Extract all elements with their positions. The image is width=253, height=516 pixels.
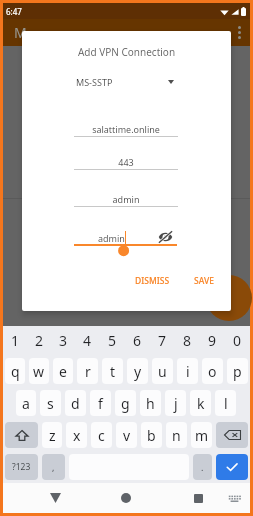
button[interactable]: i bbox=[177, 358, 198, 384]
button[interactable]: ?123 bbox=[5, 454, 38, 480]
button[interactable]: 2 bbox=[27, 326, 51, 355]
staticText: q bbox=[11, 362, 20, 381]
button[interactable]: Backspace bbox=[216, 422, 248, 448]
staticText: n bbox=[172, 426, 181, 445]
button[interactable]: . bbox=[193, 454, 212, 480]
button[interactable]: u bbox=[152, 358, 173, 384]
button[interactable]: z bbox=[42, 422, 62, 448]
staticText: d bbox=[71, 394, 80, 413]
button[interactable]: g bbox=[115, 390, 136, 416]
button[interactable]: 4 bbox=[75, 326, 100, 355]
staticText: , bbox=[52, 461, 55, 473]
staticText: u bbox=[158, 362, 167, 381]
staticText: MS-SSTP bbox=[76, 76, 113, 88]
staticText: x bbox=[73, 426, 81, 445]
staticText: a bbox=[22, 394, 30, 413]
button[interactable]: s bbox=[40, 390, 61, 416]
staticText: s bbox=[47, 394, 54, 413]
staticText: salattime.online bbox=[74, 123, 178, 135]
button[interactable]: t bbox=[102, 358, 123, 384]
staticText: l bbox=[224, 394, 228, 413]
button[interactable]: MS-SSTP bbox=[76, 74, 174, 90]
button[interactable]: c bbox=[91, 422, 112, 448]
button[interactable]: 9 bbox=[200, 326, 225, 355]
staticText: 1 bbox=[11, 331, 20, 350]
staticText: i bbox=[186, 362, 190, 381]
button[interactable]: f bbox=[90, 390, 111, 416]
other: Backspace bbox=[224, 429, 241, 441]
button[interactable]: SAVE bbox=[187, 272, 221, 289]
staticText: v bbox=[123, 426, 131, 445]
button[interactable]: a bbox=[16, 390, 36, 416]
staticText: 6:47 bbox=[6, 6, 22, 17]
button[interactable]: r bbox=[77, 358, 98, 384]
staticText: k bbox=[197, 394, 205, 413]
button[interactable]: m bbox=[191, 422, 212, 448]
button[interactable]: v bbox=[116, 422, 137, 448]
staticText: 0 bbox=[233, 331, 242, 350]
staticText: y bbox=[134, 362, 142, 381]
staticText: . bbox=[201, 461, 204, 473]
button[interactable]: Toggle password visibility bbox=[155, 228, 175, 246]
button[interactable]: Add VPN bbox=[206, 275, 252, 321]
button[interactable]: Shift bbox=[5, 422, 38, 448]
button[interactable]: e bbox=[53, 358, 73, 384]
staticText: 6 bbox=[133, 331, 142, 350]
staticText: admin bbox=[74, 193, 178, 205]
staticText: m bbox=[195, 426, 209, 445]
button[interactable]: k bbox=[190, 390, 211, 416]
button[interactable]: b bbox=[141, 422, 162, 448]
staticText: t bbox=[110, 362, 116, 381]
staticText: b bbox=[147, 426, 156, 445]
button[interactable]: 7 bbox=[150, 326, 175, 355]
button[interactable]: 6 bbox=[125, 326, 150, 355]
staticText: j bbox=[174, 394, 178, 413]
button[interactable]: Home bbox=[111, 483, 141, 513]
staticText: 443 bbox=[74, 156, 178, 168]
button[interactable]: d bbox=[65, 390, 86, 416]
button[interactable]: Recent apps bbox=[183, 483, 213, 513]
button[interactable]: w bbox=[29, 358, 49, 384]
staticText: 3 bbox=[59, 331, 68, 350]
staticText: 5 bbox=[108, 331, 117, 350]
staticText: p bbox=[233, 362, 242, 381]
button[interactable]: Enter bbox=[216, 454, 248, 480]
staticText: 4 bbox=[83, 331, 92, 350]
button[interactable]: q bbox=[5, 358, 25, 384]
staticText: h bbox=[146, 394, 155, 413]
button[interactable]: Change keyboard bbox=[221, 483, 247, 513]
button[interactable]: p bbox=[227, 358, 248, 384]
button[interactable]: o bbox=[202, 358, 223, 384]
staticText: e bbox=[59, 362, 67, 381]
staticText: w bbox=[33, 362, 45, 381]
staticText: 7 bbox=[158, 331, 167, 350]
staticText: c bbox=[98, 426, 105, 445]
button[interactable]: 3 bbox=[51, 326, 75, 355]
button[interactable]: j bbox=[165, 390, 186, 416]
button[interactable]: 0 bbox=[225, 326, 250, 355]
button[interactable]: DISMISS bbox=[126, 272, 178, 289]
button[interactable]: h bbox=[140, 390, 161, 416]
button[interactable]: , bbox=[42, 454, 65, 480]
staticText: 8 bbox=[183, 331, 192, 350]
staticText: 2 bbox=[35, 331, 44, 350]
staticText: Add VPN Connection bbox=[22, 45, 231, 59]
staticText: DISMISS bbox=[135, 275, 170, 287]
button[interactable]: n bbox=[166, 422, 187, 448]
button[interactable]: 8 bbox=[175, 326, 200, 355]
button[interactable]: 5 bbox=[100, 326, 125, 355]
button[interactable]: x bbox=[66, 422, 87, 448]
button[interactable]: l bbox=[215, 390, 236, 416]
staticText: SAVE bbox=[194, 275, 214, 287]
staticText: z bbox=[49, 426, 56, 445]
staticText: M bbox=[14, 23, 27, 42]
staticText: ?123 bbox=[12, 461, 31, 473]
button[interactable]: Back bbox=[40, 483, 70, 513]
staticText: r bbox=[85, 362, 91, 381]
button[interactable]: 1 bbox=[3, 326, 27, 355]
other: Shift bbox=[15, 429, 29, 442]
staticText: g bbox=[121, 394, 130, 413]
staticText: 9 bbox=[208, 331, 217, 350]
button[interactable]: y bbox=[127, 358, 148, 384]
